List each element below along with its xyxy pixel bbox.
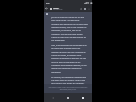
button[interactable]: Share <box>79 7 83 11</box>
staticText: Free Research Preview. ChatGPT may produ… <box>47 87 89 91</box>
button[interactable]: Back <box>50 95 56 101</box>
staticText: chat.openai.com <box>53 9 63 11</box>
button[interactable]: Home <box>65 95 71 101</box>
staticText: 9:41 <box>46 2 50 4</box>
button[interactable]: Recents <box>80 95 86 101</box>
button[interactable]: Account <box>83 7 87 11</box>
button[interactable]: More options <box>87 7 90 10</box>
staticText: ChatGPT <box>53 7 59 9</box>
button[interactable]: Back <box>44 6 49 11</box>
